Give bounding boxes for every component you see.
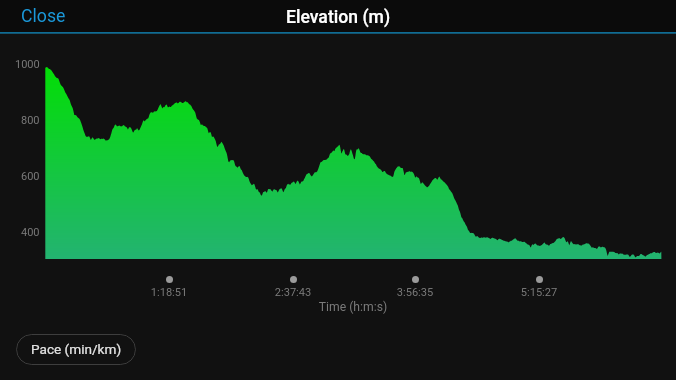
staticText: 800 <box>21 114 40 127</box>
staticText: Pace (min/km) <box>31 341 122 357</box>
staticText: 600 <box>21 170 40 183</box>
staticText: 400 <box>21 226 40 239</box>
staticText: 3:56:35 <box>375 286 455 299</box>
staticText: Elevation (m) <box>286 7 391 28</box>
staticText: 2:37:43 <box>253 286 333 299</box>
staticText: Close <box>21 6 66 27</box>
staticText: 1000 <box>15 58 40 71</box>
button[interactable]: Pace (min/km) <box>16 334 136 365</box>
staticText: 1:18:51 <box>129 286 209 299</box>
button[interactable]: Close <box>0 1 82 32</box>
staticText: Time (h:m:s) <box>253 300 453 314</box>
staticText: 5:15:27 <box>499 286 579 299</box>
